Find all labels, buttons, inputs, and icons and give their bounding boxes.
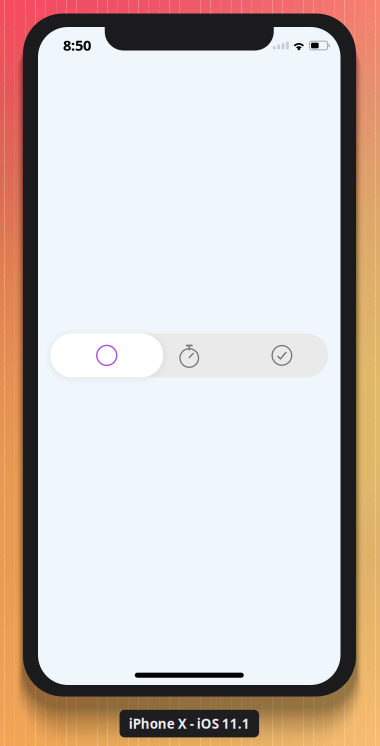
- staticText: iPhone X - iOS 11.1: [129, 715, 250, 732]
- staticText: 8:50: [63, 35, 91, 55]
- button[interactable]: Record: [50, 333, 163, 377]
- button[interactable]: Timer: [148, 333, 230, 377]
- button[interactable]: Completed: [241, 333, 323, 377]
- button[interactable]: iPhone X - iOS 11.1: [120, 710, 259, 737]
